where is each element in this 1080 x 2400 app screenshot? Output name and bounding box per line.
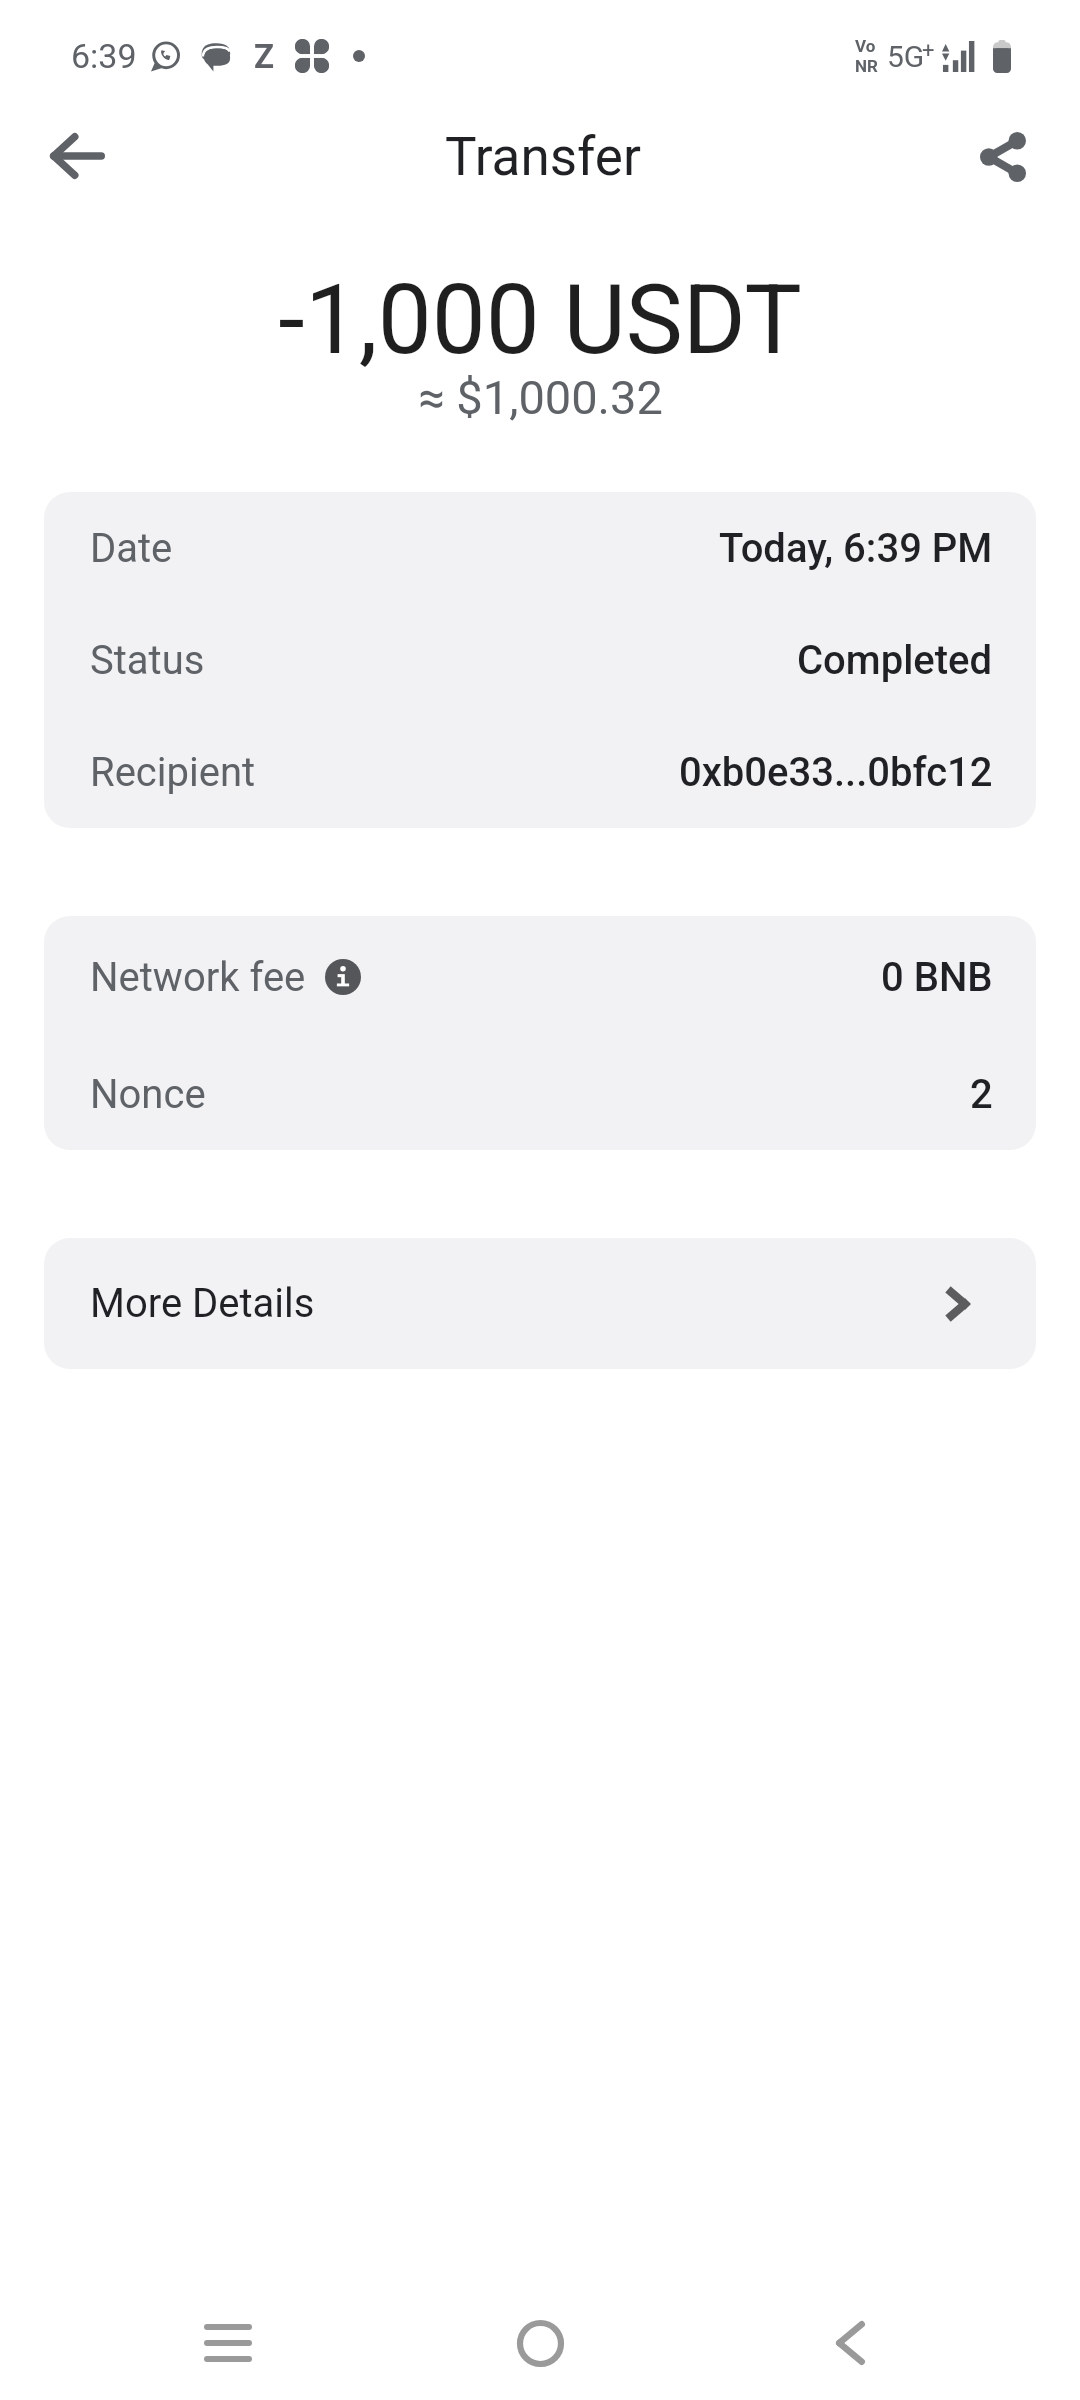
staticText: 0xb0e33...0bfc12 <box>679 749 993 796</box>
button[interactable]: Share <box>960 114 1046 200</box>
staticText: 5G <box>887 39 925 74</box>
staticText: ≈ $1,000.32 <box>418 370 663 425</box>
staticText: Status <box>90 637 205 684</box>
staticText: -1,000 USDT <box>278 264 802 377</box>
button[interactable]: Home <box>480 2286 600 2400</box>
staticText: Vo <box>855 36 876 56</box>
staticText: Network fee <box>90 954 306 1001</box>
staticText: Transfer <box>445 126 641 188</box>
staticText: Recipient <box>90 749 256 796</box>
staticText: Today, 6:39 PM <box>719 525 993 572</box>
button[interactable]: Back <box>790 2286 910 2400</box>
staticText: Completed <box>797 637 993 684</box>
button[interactable]: Back <box>30 109 124 203</box>
button[interactable]: Recents <box>168 2286 288 2400</box>
staticText: 6:39 <box>71 36 137 76</box>
staticText: 2 <box>970 1071 993 1118</box>
staticText: Z <box>254 37 275 76</box>
staticText: NR <box>855 56 878 76</box>
staticText: More Details <box>90 1280 315 1327</box>
button[interactable]: More Details <box>44 1238 1036 1369</box>
staticText: 0 BNB <box>881 954 993 1001</box>
staticText: Date <box>90 525 173 572</box>
staticText: + <box>922 38 935 64</box>
staticText: Nonce <box>90 1071 206 1118</box>
